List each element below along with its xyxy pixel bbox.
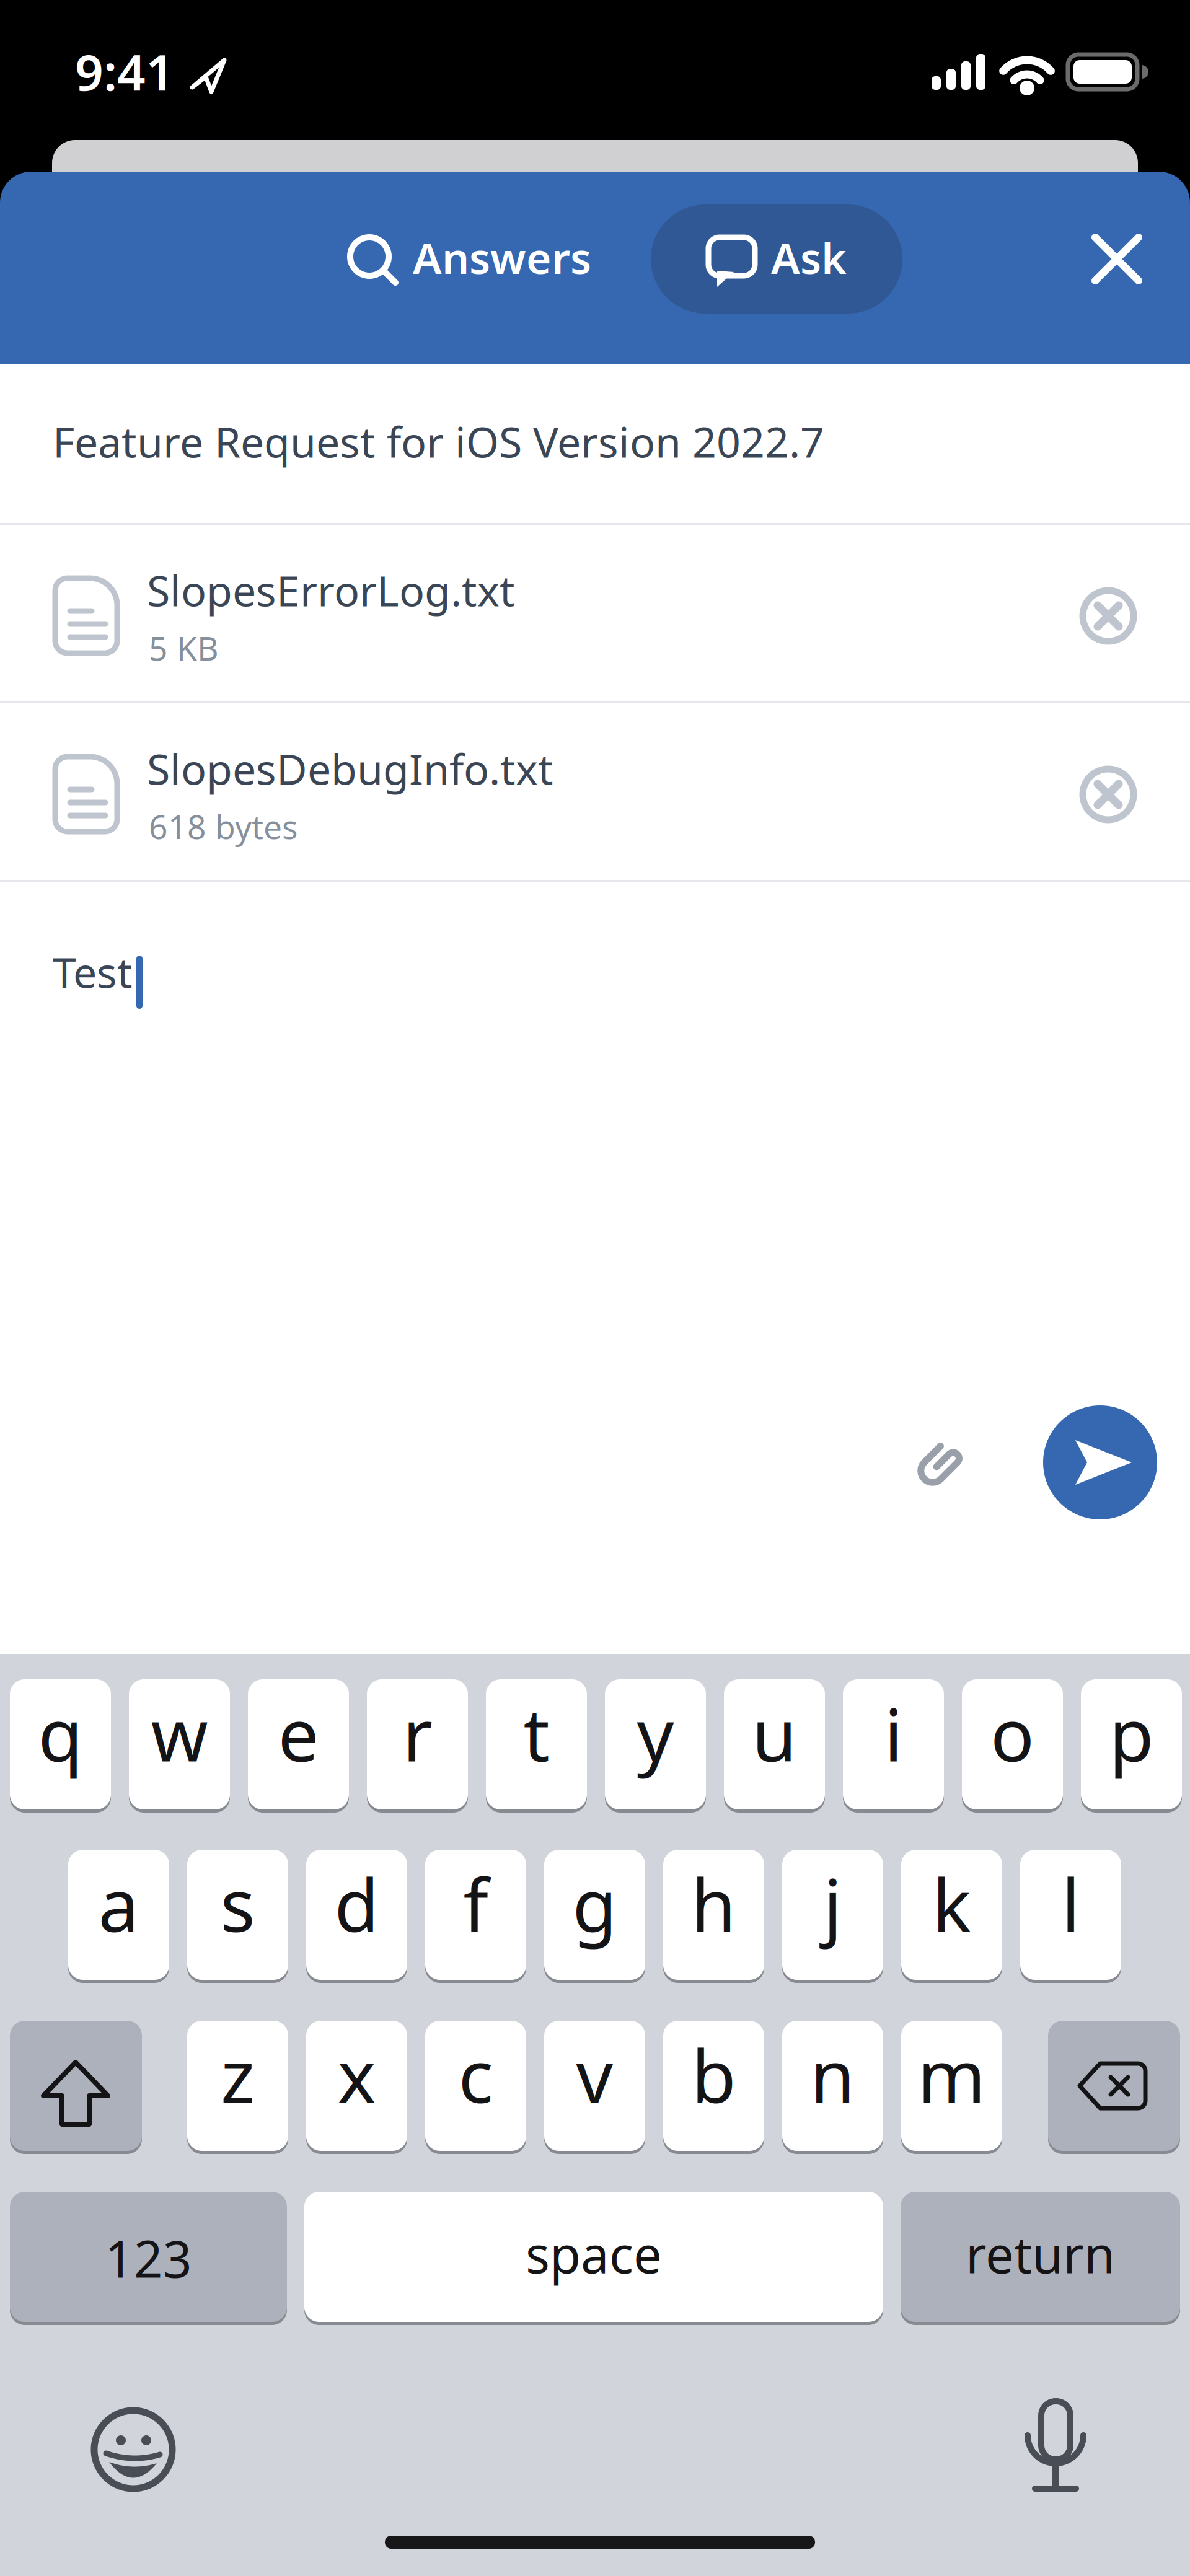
- staticText: 9:41: [75, 38, 174, 104]
- button[interactable]: j: [782, 1850, 883, 1983]
- staticText: y: [637, 1685, 674, 1782]
- button[interactable]: Remove attachment: [1065, 573, 1152, 659]
- button[interactable]: y: [605, 1679, 706, 1813]
- staticText: m: [918, 2026, 986, 2123]
- button[interactable]: h: [663, 1850, 764, 1983]
- button[interactable]: t: [486, 1679, 587, 1813]
- button[interactable]: Shift: [10, 2021, 142, 2154]
- staticText: Ask: [771, 229, 847, 286]
- button[interactable]: return: [901, 2192, 1180, 2325]
- button[interactable]: e: [248, 1679, 349, 1813]
- staticText: j: [823, 1855, 842, 1952]
- button[interactable]: c: [425, 2021, 526, 2154]
- staticText: w: [151, 1685, 208, 1782]
- staticText: g: [572, 1855, 617, 1952]
- staticText: p: [1109, 1685, 1154, 1782]
- staticText: 618 bytes: [149, 804, 298, 848]
- staticText: a: [98, 1855, 139, 1952]
- button[interactable]: Send: [1043, 1405, 1157, 1519]
- staticText: Feature Request for iOS Version 2022.7: [53, 413, 824, 469]
- staticText: f: [463, 1855, 488, 1952]
- staticText: o: [990, 1685, 1034, 1782]
- button[interactable]: Close: [1067, 209, 1166, 309]
- button[interactable]: a: [68, 1850, 169, 1983]
- button[interactable]: Attach file: [901, 1425, 978, 1502]
- button[interactable]: z: [187, 2021, 288, 2154]
- button[interactable]: Answers: [348, 204, 621, 314]
- staticText: z: [221, 2026, 255, 2123]
- button[interactable]: f: [425, 1850, 526, 1983]
- staticText: e: [278, 1685, 319, 1782]
- button[interactable]: o: [962, 1679, 1063, 1813]
- button[interactable]: s: [187, 1850, 288, 1983]
- button[interactable]: Emoji: [84, 2400, 183, 2499]
- button[interactable]: n: [782, 2021, 883, 2154]
- staticText: SlopesDebugInfo.txt: [147, 741, 553, 796]
- staticText: h: [691, 1855, 736, 1952]
- button[interactable]: space: [304, 2192, 883, 2325]
- button[interactable]: g: [544, 1850, 645, 1983]
- staticText: r: [403, 1685, 432, 1782]
- staticText: Test: [53, 944, 133, 1000]
- staticText: l: [1061, 1855, 1080, 1952]
- button[interactable]: 123: [10, 2192, 287, 2325]
- button[interactable]: r: [367, 1679, 468, 1813]
- staticText: 123: [105, 2225, 192, 2292]
- staticText: i: [884, 1685, 903, 1782]
- button[interactable]: Remove attachment: [1065, 751, 1152, 838]
- button[interactable]: w: [129, 1679, 230, 1813]
- button[interactable]: b: [663, 2021, 764, 2154]
- staticText: return: [966, 2220, 1115, 2287]
- button[interactable]: u: [724, 1679, 825, 1813]
- button[interactable]: k: [901, 1850, 1002, 1983]
- staticText: v: [576, 2026, 613, 2123]
- staticText: t: [523, 1685, 549, 1782]
- staticText: space: [526, 2220, 662, 2287]
- staticText: n: [810, 2026, 855, 2123]
- staticText: u: [752, 1685, 797, 1782]
- button[interactable]: Ask: [651, 204, 902, 314]
- button[interactable]: m: [901, 2021, 1002, 2154]
- button[interactable]: v: [544, 2021, 645, 2154]
- button[interactable]: Dictation: [1006, 2400, 1105, 2499]
- button[interactable]: Delete: [1048, 2021, 1180, 2154]
- button[interactable]: d: [306, 1850, 407, 1983]
- staticText: SlopesErrorLog.txt: [147, 562, 515, 618]
- staticText: k: [932, 1855, 971, 1952]
- staticText: s: [220, 1855, 255, 1952]
- staticText: 5 KB: [149, 626, 219, 670]
- staticText: Answers: [413, 229, 591, 286]
- button[interactable]: q: [10, 1679, 111, 1813]
- button[interactable]: p: [1081, 1679, 1182, 1813]
- staticText: q: [38, 1685, 83, 1782]
- staticText: c: [458, 2026, 493, 2123]
- staticText: x: [337, 2026, 376, 2123]
- button[interactable]: x: [306, 2021, 407, 2154]
- staticText: b: [691, 2026, 736, 2123]
- button[interactable]: l: [1020, 1850, 1121, 1983]
- button[interactable]: i: [843, 1679, 944, 1813]
- staticText: d: [334, 1855, 379, 1952]
